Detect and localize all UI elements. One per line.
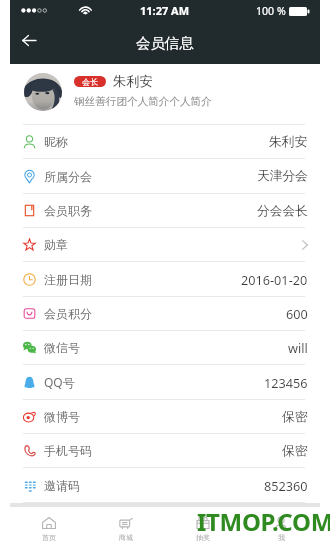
staticText: 微信号 — [44, 340, 80, 355]
button[interactable]: Back — [10, 21, 54, 64]
button[interactable]: 会长 — [10, 64, 320, 124]
button[interactable]: 商城 — [87, 507, 164, 550]
button[interactable]: 会员积分 — [10, 297, 320, 331]
staticText: 2016-01-20 — [241, 271, 308, 288]
button[interactable]: 注册日期 — [10, 262, 320, 297]
button[interactable]: 抽奖 — [164, 507, 242, 550]
staticText: 勋章 — [44, 237, 68, 252]
staticText: 商城 — [119, 533, 133, 542]
staticText: 手机号码 — [44, 443, 92, 458]
button[interactable]: 昵称 — [10, 125, 320, 159]
staticText: 保密 — [282, 409, 308, 425]
staticText: 钢丝善行团个人简介个人简介 — [74, 95, 212, 108]
staticText: 天津分会 — [257, 168, 308, 184]
button[interactable]: 手机号码 — [10, 434, 320, 468]
button[interactable]: 所属分会 — [10, 159, 320, 194]
button[interactable]: 首页 — [10, 507, 87, 550]
staticText: 会员信息 — [136, 34, 194, 52]
staticText: 所属分会 — [44, 169, 92, 184]
staticText: 852360 — [264, 477, 308, 494]
button[interactable]: 微信号 — [10, 331, 320, 365]
staticText: 会员职务 — [44, 203, 92, 218]
staticText: 保密 — [282, 443, 308, 459]
staticText: 微博号 — [44, 409, 80, 424]
staticText: ITMOP.COM — [197, 505, 330, 538]
staticText: 注册日期 — [44, 272, 92, 287]
staticText: 昵称 — [44, 134, 68, 149]
button[interactable]: 邀请码 — [10, 468, 320, 503]
staticText: 抽奖 — [196, 533, 210, 542]
staticText: QQ号 — [44, 374, 75, 390]
staticText: 100 % — [256, 4, 286, 18]
staticText: will — [288, 339, 308, 356]
staticText: 朱利安 — [113, 73, 153, 90]
button[interactable]: 勋章 — [10, 228, 320, 262]
staticText: 邀请码 — [44, 478, 80, 493]
staticText: 我 — [278, 533, 285, 542]
button[interactable]: 我 — [242, 507, 320, 550]
staticText: 朱利安 — [269, 134, 308, 150]
staticText: 首页 — [42, 533, 56, 542]
staticText: 会员积分 — [44, 306, 92, 321]
staticText: 600 — [286, 305, 308, 322]
staticText: 123456 — [264, 374, 308, 391]
staticText: 会长 — [82, 77, 98, 87]
staticText: 分会会长 — [257, 203, 308, 219]
staticText: 11:27 AM — [140, 3, 190, 18]
button[interactable]: 会员职务 — [10, 194, 320, 228]
button[interactable]: 微博号 — [10, 400, 320, 434]
button[interactable]: QQ号 — [10, 365, 320, 400]
